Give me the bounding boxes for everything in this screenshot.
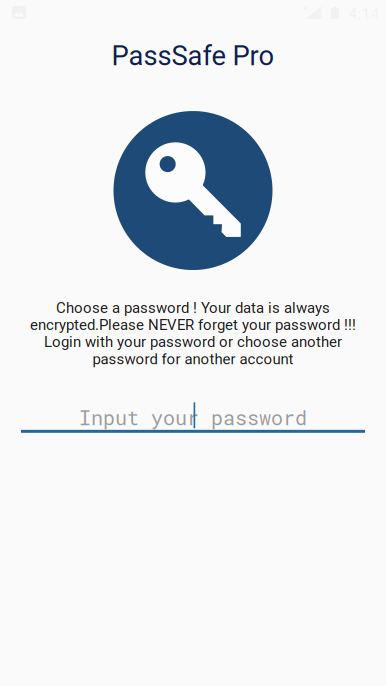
staticText: Choose a password ! Your data is always: [56, 299, 330, 316]
staticText: encrypted.Please NEVER forget your passw…: [30, 316, 356, 334]
button[interactable]: Input your password: [21, 391, 365, 433]
staticText: Login with your password or choose anoth…: [44, 333, 342, 351]
staticText: PassSafe Pro: [111, 40, 274, 72]
staticText: password for another account: [92, 350, 293, 368]
staticText: Input your password: [79, 404, 307, 431]
